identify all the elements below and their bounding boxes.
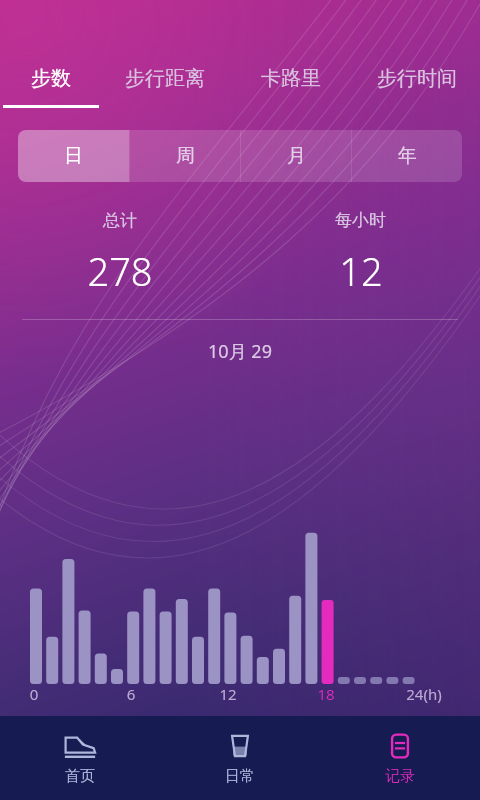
staticText: 12 xyxy=(208,684,248,704)
button[interactable]: 卡路里 xyxy=(228,0,354,108)
button[interactable]: 月 xyxy=(241,130,351,182)
staticText: 年 xyxy=(398,144,417,168)
staticText: 日常 xyxy=(225,767,255,786)
button[interactable]: 步行时间 xyxy=(354,0,480,108)
button[interactable]: 年 xyxy=(352,130,462,182)
staticText: 日 xyxy=(64,144,83,168)
button[interactable]: 日 xyxy=(18,130,129,182)
staticText: 12 xyxy=(339,245,383,297)
staticText: 卡路里 xyxy=(261,66,321,91)
button[interactable]: 周 xyxy=(130,130,240,182)
button[interactable]: 首页 xyxy=(0,716,160,800)
staticText: 步行距离 xyxy=(125,66,205,91)
staticText: 步数 xyxy=(31,66,71,91)
staticText: 步行时间 xyxy=(377,66,457,91)
staticText: 10月 29 xyxy=(0,339,480,364)
staticText: 记录 xyxy=(385,767,415,786)
staticText: 278 xyxy=(87,245,153,297)
staticText: 月 xyxy=(287,144,306,168)
button[interactable]: 日常 xyxy=(160,716,320,800)
staticText: 24(h) xyxy=(404,684,444,704)
button[interactable]: 步行距离 xyxy=(102,0,228,108)
staticText: 首页 xyxy=(65,767,95,786)
staticText: 周 xyxy=(176,144,195,168)
staticText: 总计 xyxy=(103,210,137,231)
staticText: 0 xyxy=(14,684,54,704)
staticText: 每小时 xyxy=(335,210,386,231)
button[interactable]: 步数 xyxy=(0,0,102,108)
button[interactable]: 记录 xyxy=(320,716,480,800)
staticText: 18 xyxy=(306,684,346,704)
staticText: 6 xyxy=(111,684,151,704)
